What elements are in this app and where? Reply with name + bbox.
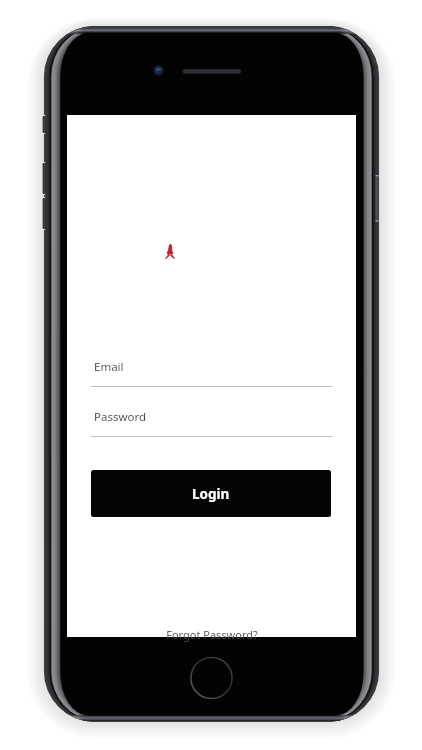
button[interactable]: Email: [91, 352, 332, 388]
staticText: Password: [94, 409, 147, 425]
staticText: Forgot Password?: [166, 627, 258, 642]
button[interactable]: Login: [91, 470, 331, 517]
other: App logo: [165, 244, 175, 259]
staticText: Login: [192, 485, 230, 503]
staticText: Email: [94, 359, 124, 375]
button[interactable]: Password: [91, 402, 332, 438]
button[interactable]: Forgot Password?: [67, 627, 356, 642]
